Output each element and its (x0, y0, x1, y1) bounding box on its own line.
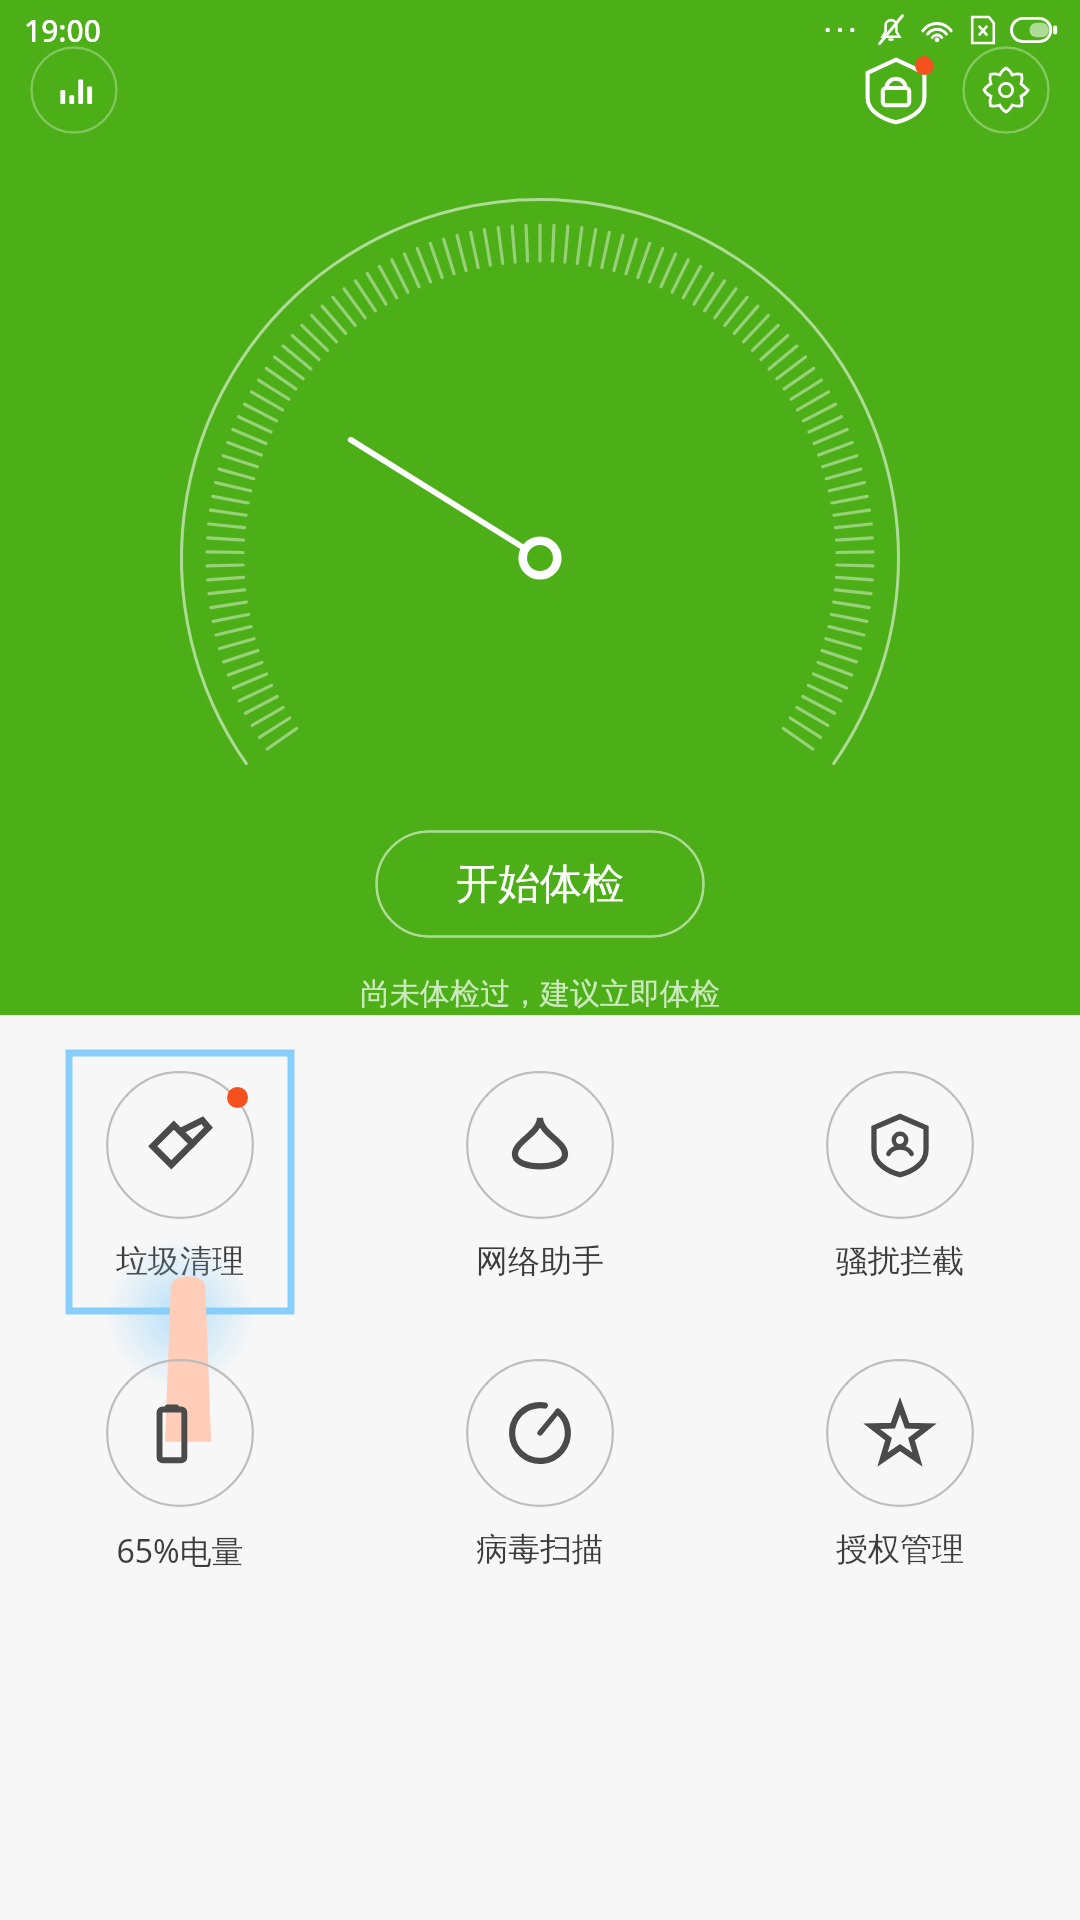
button[interactable]: Settings (962, 46, 1050, 134)
button[interactable]: Statistics (30, 46, 118, 134)
staticText: 骚扰拦截 (836, 1241, 964, 1281)
button[interactable]: 65%电量 (69, 1341, 291, 1599)
button[interactable]: 网络助手 (429, 1053, 651, 1311)
staticText: 垃圾清理 (116, 1241, 244, 1281)
staticText: 尚未体检过，建议立即体检 (360, 975, 720, 1013)
staticText: 网络助手 (476, 1241, 604, 1281)
button[interactable]: 垃圾清理 (69, 1053, 291, 1311)
button[interactable]: 开始体检 (375, 830, 705, 938)
staticText: 开始体检 (456, 858, 624, 911)
staticText: 19:00 (24, 10, 101, 51)
button[interactable]: Security (850, 44, 942, 136)
button[interactable]: 骚扰拦截 (789, 1053, 1011, 1311)
staticText: 病毒扫描 (476, 1529, 604, 1569)
staticText: 授权管理 (836, 1529, 964, 1569)
staticText: 65%电量 (116, 1529, 244, 1573)
button[interactable]: 病毒扫描 (429, 1341, 651, 1599)
button[interactable]: 授权管理 (789, 1341, 1011, 1599)
